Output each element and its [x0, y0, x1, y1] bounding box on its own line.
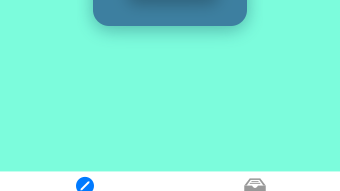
button[interactable]: Browse — [0, 171, 170, 191]
button[interactable]: Tabs — [170, 171, 340, 191]
